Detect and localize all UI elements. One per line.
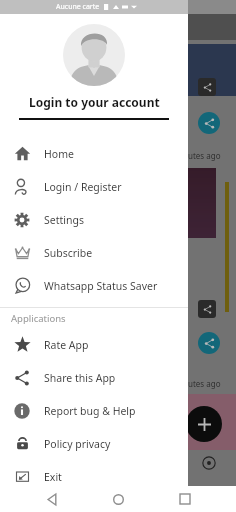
staticText: Share this App <box>44 371 116 385</box>
staticText: Report bug & Help <box>44 404 136 418</box>
button[interactable]: Back <box>37 486 67 512</box>
button[interactable]: Subscribe <box>0 236 188 269</box>
staticText: Whatsapp Status Saver <box>44 279 158 293</box>
button[interactable]: Home <box>103 486 133 512</box>
staticText: utes ago <box>188 378 221 389</box>
button[interactable]: Login to your account <box>29 94 160 110</box>
button[interactable]: Login / Register <box>0 170 188 203</box>
staticText: Subscribe <box>44 246 93 260</box>
button[interactable]: Add <box>186 406 222 442</box>
button[interactable]: Share post <box>198 332 220 354</box>
button[interactable]: Share <box>198 112 220 134</box>
staticText: Aucune carte <box>56 2 100 12</box>
staticText: Rate App <box>44 338 89 352</box>
button[interactable]: Home <box>0 137 188 170</box>
staticText: Applications <box>11 312 66 325</box>
button[interactable]: Report bug & Help <box>0 394 188 427</box>
staticText: Home <box>44 147 74 161</box>
button[interactable]: Exit <box>0 460 188 493</box>
button[interactable]: Settings <box>0 203 188 236</box>
button[interactable]: Download <box>202 456 216 470</box>
button[interactable]: Recent apps <box>170 486 200 512</box>
button[interactable]: Profile photo <box>63 24 125 86</box>
button[interactable]: Policy privacy <box>0 427 188 460</box>
staticText: Settings <box>44 213 84 227</box>
button[interactable]: Whatsapp Status Saver <box>0 269 188 302</box>
staticText: utes ago <box>188 150 221 161</box>
button[interactable]: Share this App <box>0 361 188 394</box>
staticText: Login / Register <box>44 180 122 194</box>
staticText: Exit <box>44 470 62 484</box>
staticText: Policy privacy <box>44 437 111 451</box>
button[interactable]: Rate App <box>0 328 188 361</box>
